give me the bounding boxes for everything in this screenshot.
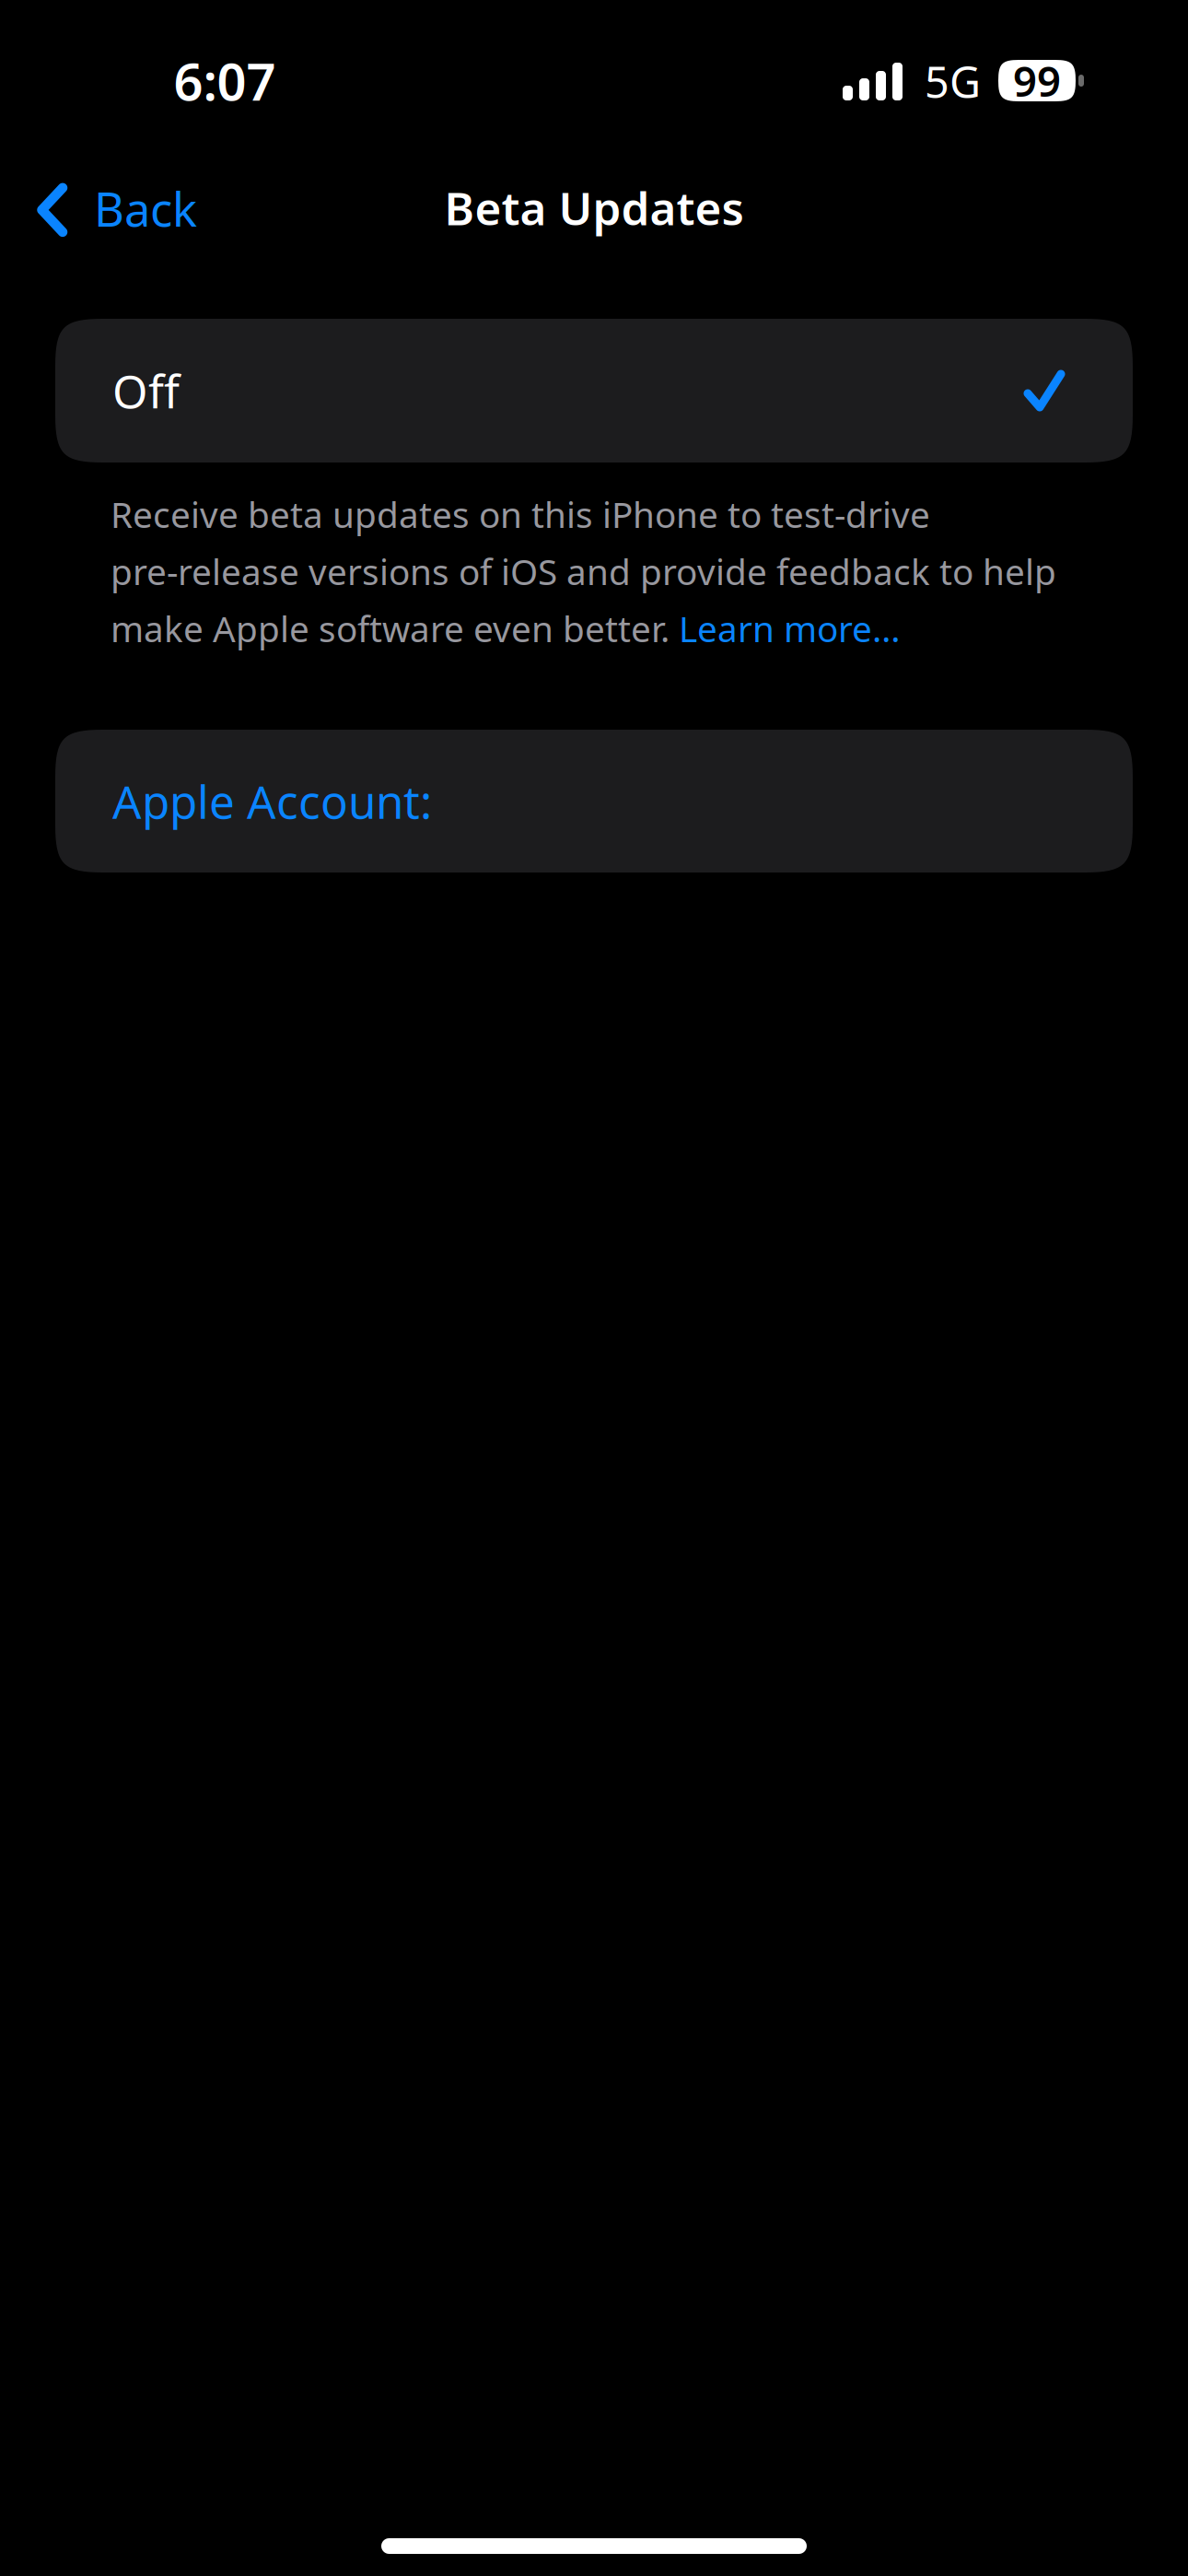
staticText: make Apple software even better. [111, 605, 670, 652]
staticText: Receive beta updates on this iPhone to t… [111, 490, 930, 538]
staticText: Apple Account: [112, 771, 432, 831]
staticText: 6:07 [174, 46, 276, 115]
staticText: pre-release versions of iOS and provide … [111, 548, 1056, 595]
button[interactable]: Off [55, 319, 1133, 463]
button[interactable]: Learn more… [670, 605, 901, 652]
staticText: 99 [1013, 53, 1061, 108]
staticText: Back [94, 178, 197, 240]
button[interactable]: Apple Account: [55, 730, 1133, 872]
staticText: Off [112, 360, 180, 421]
staticText: Learn more… [670, 605, 901, 652]
button[interactable]: Back [0, 134, 219, 240]
staticText: 5G [925, 53, 981, 110]
staticText: Beta Updates [444, 177, 744, 238]
